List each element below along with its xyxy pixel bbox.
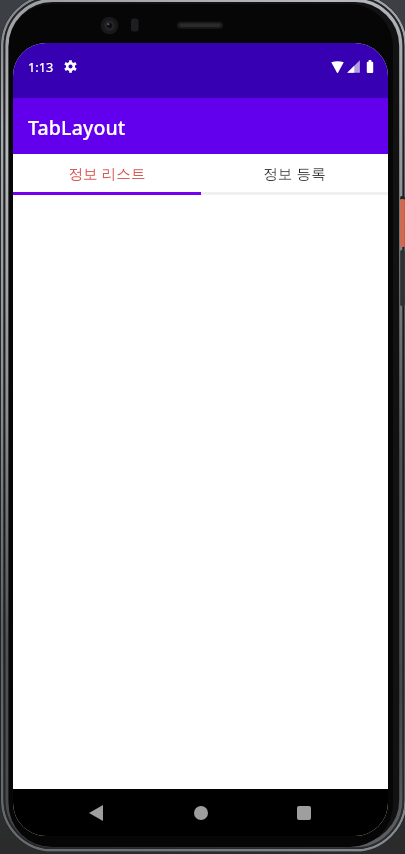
button[interactable]: Recent apps bbox=[284, 793, 324, 833]
button[interactable]: 정보 리스트 bbox=[13, 154, 200, 192]
button[interactable]: Home bbox=[181, 793, 221, 833]
staticText: 정보 등록 bbox=[263, 163, 326, 183]
button[interactable]: Back bbox=[76, 793, 116, 833]
staticText: 정보 리스트 bbox=[68, 163, 146, 183]
button[interactable]: 정보 등록 bbox=[200, 154, 388, 192]
staticText: 1:13 bbox=[28, 58, 54, 75]
staticText: TabLayout bbox=[28, 114, 126, 141]
